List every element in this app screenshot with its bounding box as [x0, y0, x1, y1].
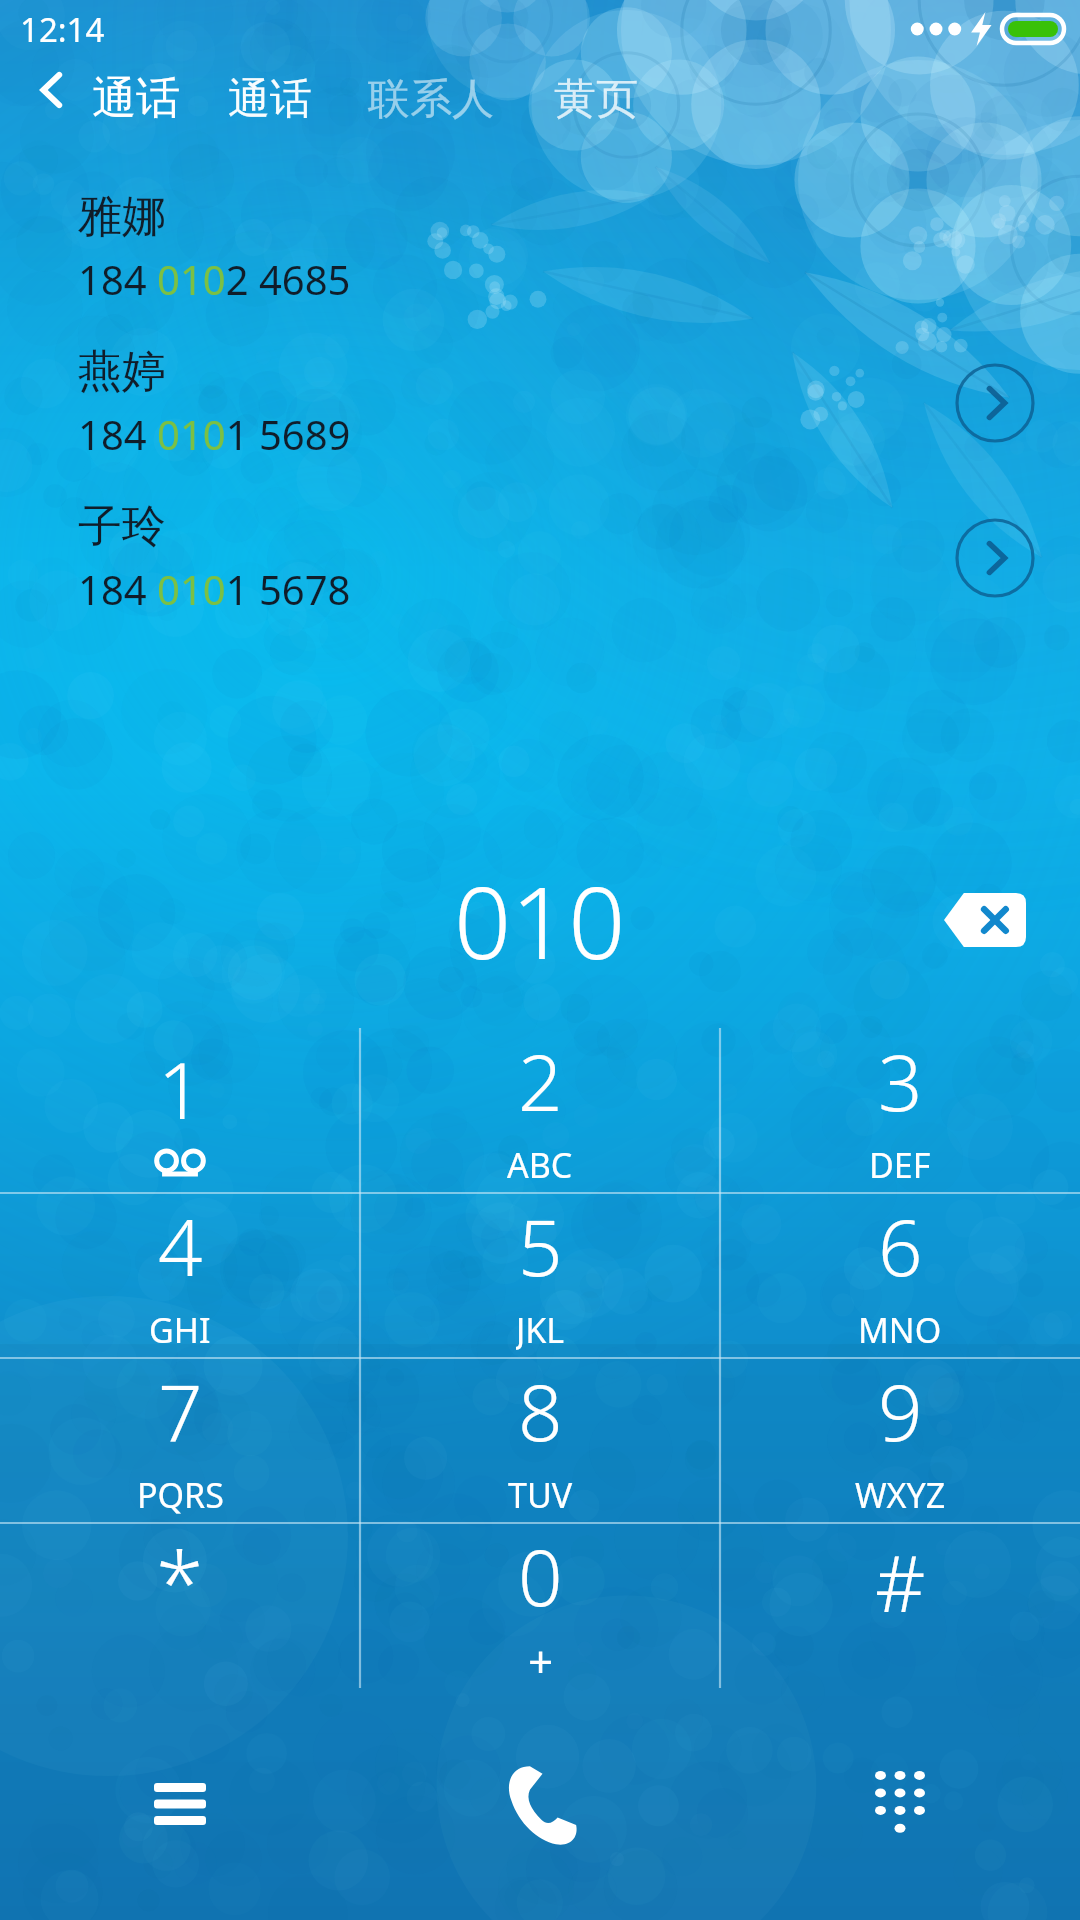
button[interactable]: Open call details — [952, 360, 1038, 446]
staticText: ABC — [507, 1142, 573, 1187]
staticText: 184 0101 5678 — [78, 562, 351, 616]
staticText: 联系人 — [368, 73, 494, 126]
button[interactable]: # — [720, 1523, 1080, 1688]
staticText: 3 — [878, 1028, 923, 1134]
button[interactable]: 2 — [360, 1028, 720, 1193]
button[interactable]: 0 — [360, 1523, 720, 1688]
staticText: 黄页 — [554, 73, 638, 126]
staticText: 5 — [518, 1193, 563, 1299]
staticText: # — [875, 1529, 926, 1635]
staticText: 12:14 — [20, 7, 105, 52]
button[interactable]: 3 — [720, 1028, 1080, 1193]
staticText: 6 — [878, 1193, 923, 1299]
button[interactable]: Dialpad — [720, 1688, 1080, 1920]
button[interactable]: Backspace — [924, 872, 1044, 968]
staticText: 雅娜 — [78, 189, 166, 244]
button[interactable]: 9 — [720, 1358, 1080, 1523]
staticText: 通话 — [92, 71, 180, 126]
staticText: 184 0102 4685 — [78, 252, 351, 306]
button[interactable]: Open call details — [952, 515, 1038, 601]
staticText: MNO — [858, 1307, 942, 1352]
button[interactable]: 6 — [720, 1193, 1080, 1358]
button[interactable]: 5 — [360, 1193, 720, 1358]
button[interactable]: 雅娜 — [0, 170, 1080, 325]
staticText: 9 — [878, 1358, 923, 1464]
button[interactable]: 燕婷 — [0, 325, 1080, 480]
button[interactable]: 联系人 — [364, 67, 498, 132]
staticText: DEF — [869, 1142, 931, 1187]
button[interactable]: 通话 — [88, 65, 184, 132]
staticText: 7 — [158, 1358, 203, 1464]
button[interactable]: 1 — [0, 1028, 360, 1193]
button[interactable]: 7 — [0, 1358, 360, 1523]
button[interactable]: 通话 — [224, 67, 316, 132]
staticText: 4 — [158, 1193, 203, 1299]
button[interactable]: 4 — [0, 1193, 360, 1358]
button[interactable]: 8 — [360, 1358, 720, 1523]
button[interactable]: Call — [360, 1688, 720, 1920]
staticText: 2 — [518, 1028, 563, 1134]
button[interactable]: Menu — [0, 1688, 360, 1920]
staticText: WXYZ — [855, 1472, 946, 1517]
button[interactable]: 子玲 — [0, 480, 1080, 635]
staticText: PQRS — [137, 1472, 224, 1517]
button[interactable]: 黄页 — [550, 67, 642, 132]
staticText: 010 — [454, 852, 626, 988]
staticText: GHI — [149, 1307, 211, 1352]
staticText: 燕婷 — [78, 344, 166, 399]
staticText: 1 — [158, 1036, 203, 1142]
staticText: * — [156, 1523, 204, 1640]
staticText: 184 0101 5689 — [78, 407, 351, 461]
staticText: 子玲 — [78, 499, 166, 554]
staticText: 8 — [518, 1358, 563, 1464]
staticText: 通话 — [228, 73, 312, 126]
staticText: + — [528, 1631, 554, 1682]
staticText: 0 — [518, 1523, 563, 1629]
button[interactable]: * — [0, 1523, 360, 1688]
staticText: JKL — [516, 1307, 565, 1352]
staticText: TUV — [508, 1472, 573, 1517]
button[interactable]: Back — [14, 52, 90, 128]
